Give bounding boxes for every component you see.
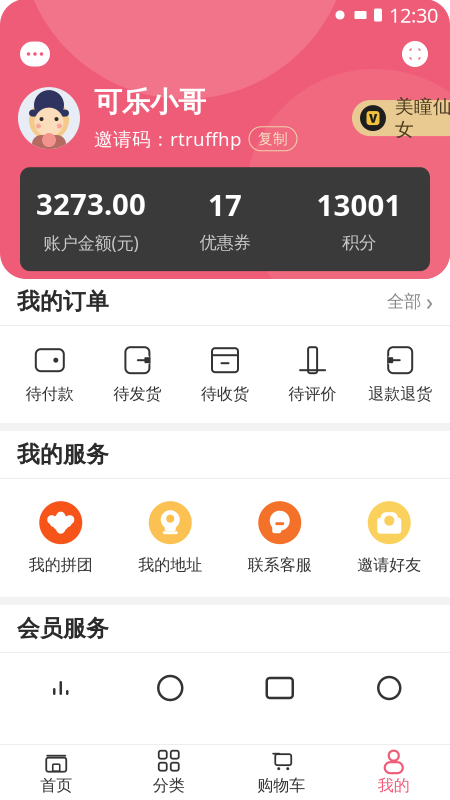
staticText: 我的 (378, 776, 410, 795)
staticText: 3273.00 (36, 184, 146, 223)
staticText: 联系客服 (248, 555, 312, 575)
button[interactable]: 待收货 (181, 341, 269, 408)
staticText: 我的服务 (17, 441, 109, 468)
button[interactable]: 联系客服 (225, 501, 334, 575)
button[interactable]: V (334, 100, 450, 136)
staticText: 待发货 (113, 384, 161, 404)
staticText: 13001 (316, 185, 401, 224)
button[interactable]: 待评价 (269, 341, 356, 408)
staticText: › (426, 286, 433, 316)
staticText: V (369, 110, 377, 126)
staticText: 复制 (258, 130, 288, 148)
staticText: 邀请码：rtruffhp (94, 126, 241, 151)
staticText: 17 (208, 185, 242, 224)
staticText: 可乐小哥 (94, 85, 206, 119)
button[interactable]: 分类 (112, 744, 225, 800)
button[interactable]: 首页 (0, 744, 112, 800)
button[interactable]: 待付款 (6, 341, 94, 408)
button[interactable]: 我的 (337, 744, 450, 800)
button[interactable]: Settings (398, 37, 432, 71)
button[interactable]: 全部 (387, 282, 433, 320)
button[interactable]: 邀请好友 (334, 501, 444, 575)
staticText: 分类 (153, 776, 185, 795)
staticText: 购物车 (257, 776, 305, 795)
staticText: 会员服务 (17, 615, 109, 642)
staticText: 待付款 (26, 384, 74, 404)
staticText: 全部 (387, 291, 421, 312)
staticText: 账户金额(元) (43, 231, 138, 254)
staticText: 邀请好友 (357, 555, 421, 575)
staticText: 待评价 (289, 384, 337, 404)
button[interactable]: 退款退货 (356, 341, 444, 408)
staticText: 积分 (342, 232, 376, 253)
button[interactable]: 我的地址 (115, 501, 225, 575)
staticText: 首页 (40, 776, 72, 795)
staticText: 我的地址 (138, 555, 202, 575)
button[interactable]: 我的拼团 (6, 501, 115, 575)
staticText: 12:30 (389, 2, 438, 28)
button[interactable]: 可乐小哥 (18, 85, 297, 151)
staticText: 我的拼团 (29, 555, 93, 575)
staticText: 退款退货 (368, 384, 432, 404)
staticText: 我的订单 (17, 288, 109, 315)
button[interactable]: 购物车 (225, 744, 337, 800)
staticText: 待收货 (201, 384, 249, 404)
button[interactable]: Messages (18, 37, 52, 71)
staticText: 美瞳仙女 (395, 95, 450, 141)
staticText: 优惠券 (199, 232, 250, 253)
button[interactable]: 待发货 (94, 341, 181, 408)
